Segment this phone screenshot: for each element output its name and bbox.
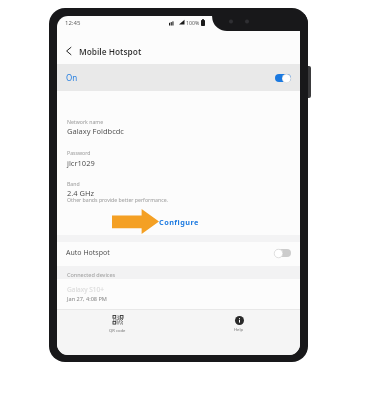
staticText: Galaxy S10+ (67, 285, 104, 294)
staticText: Mobile Hotspot (79, 46, 142, 57)
staticText: Help (234, 327, 244, 333)
staticText: 2.4 GHz (67, 188, 95, 198)
staticText: QR code (109, 328, 126, 334)
button[interactable]: Navigate up (62, 44, 76, 58)
button[interactable]: On (57, 64, 300, 91)
staticText: Connected devices (67, 271, 116, 278)
staticText: Configure (159, 217, 199, 227)
staticText: Password (67, 149, 91, 156)
staticText: Network name (67, 118, 104, 125)
button[interactable]: Auto Hotspot (57, 240, 300, 266)
staticText: Band (67, 180, 80, 187)
button[interactable]: Configure (57, 210, 300, 234)
button[interactable]: Help (178, 312, 300, 336)
staticText: 12:45 (65, 19, 81, 27)
button[interactable]: QR code (57, 312, 178, 336)
staticText: 100% (186, 19, 200, 26)
staticText: On (66, 72, 78, 83)
button[interactable]: Turn off (274, 73, 291, 83)
staticText: Auto Hotspot (66, 248, 110, 258)
staticText: Other bands provide better performance. (67, 196, 168, 203)
button[interactable]: Turn on (274, 248, 291, 258)
staticText: Galaxy Foldbcdc (67, 126, 124, 136)
staticText: jlcr1029 (67, 158, 95, 168)
staticText: Jan 27, 4:08 PM (67, 295, 107, 303)
